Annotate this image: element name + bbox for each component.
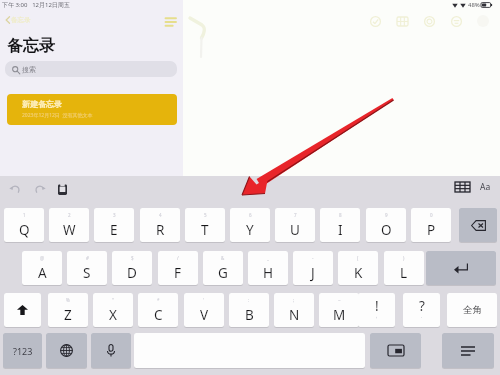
staticText: " — [112, 297, 114, 303]
staticText: 3 — [113, 212, 116, 218]
staticText: V — [200, 306, 209, 324]
button[interactable]: Notes menu — [162, 14, 178, 30]
staticText: W — [63, 221, 76, 239]
button[interactable]: ) — [384, 251, 424, 285]
staticText: ; — [293, 297, 295, 303]
staticText: 9 — [385, 212, 388, 218]
button[interactable]: Voice input — [91, 333, 131, 368]
staticText: J — [311, 264, 315, 282]
button[interactable]: ?123 — [3, 333, 42, 368]
staticText: T — [201, 221, 209, 239]
button[interactable]: Text style — [476, 179, 494, 195]
button[interactable]: / — [158, 251, 198, 285]
staticText: ( — [357, 255, 359, 261]
button[interactable]: Shift — [4, 293, 41, 327]
button[interactable]: 备忘录 — [5, 14, 41, 26]
button[interactable]: ~ — [319, 293, 359, 327]
staticText: : — [248, 297, 250, 303]
button[interactable]: ' — [184, 293, 224, 327]
button[interactable]: Redo — [31, 181, 49, 195]
staticText: / — [177, 255, 179, 261]
staticText: S — [83, 264, 91, 282]
button[interactable]: - — [293, 251, 333, 285]
button[interactable]: Paste — [54, 179, 70, 198]
button[interactable]: 5 — [185, 208, 225, 242]
button[interactable]: Hide keyboard — [370, 333, 421, 368]
button[interactable]: # — [67, 251, 107, 285]
staticText: * — [157, 297, 160, 303]
button[interactable]: 1 — [4, 208, 44, 242]
staticText: P — [427, 221, 436, 239]
button[interactable]: 7 — [275, 208, 315, 242]
staticText: ) — [403, 255, 405, 261]
staticText: ? — [419, 297, 425, 315]
button[interactable]: " — [93, 293, 133, 327]
button[interactable]: _ — [248, 251, 288, 285]
button[interactable]: Keyboard layout — [452, 179, 472, 195]
staticText: 新建备忘录 — [22, 99, 62, 109]
staticText: 备忘录 — [7, 36, 55, 56]
staticText: Q — [19, 221, 30, 239]
staticText: 全角 — [463, 304, 482, 316]
staticText: ! — [375, 297, 379, 315]
button[interactable]: . — [403, 293, 440, 327]
button[interactable]: 2 — [49, 208, 89, 242]
staticText: - — [312, 255, 314, 261]
staticText: 48% — [468, 1, 480, 9]
staticText: G — [218, 264, 228, 282]
button[interactable]: 6 — [230, 208, 270, 242]
button[interactable]: * — [138, 293, 178, 327]
staticText: 2 — [68, 212, 71, 218]
button[interactable]: % — [48, 293, 88, 327]
staticText: Y — [246, 221, 254, 239]
button[interactable]: ; — [274, 293, 314, 327]
staticText: ' — [203, 297, 205, 303]
button[interactable]: 0 — [411, 208, 451, 242]
button[interactable]: @ — [22, 251, 62, 285]
button[interactable]: Backspace — [459, 208, 497, 242]
button[interactable]: Return — [426, 251, 496, 285]
button[interactable]: , — [358, 293, 395, 327]
button[interactable]: 4 — [140, 208, 180, 242]
button[interactable]: 全角 — [447, 293, 497, 327]
staticText: 6 — [249, 212, 252, 218]
button[interactable]: Undo — [6, 181, 24, 195]
button[interactable]: 3 — [94, 208, 134, 242]
staticText: Aa — [480, 181, 491, 193]
staticText: ~ — [338, 297, 341, 303]
button[interactable]: Checklist — [368, 14, 382, 28]
button[interactable]: : — [229, 293, 269, 327]
staticText: . — [421, 313, 423, 320]
button[interactable]: Change language — [46, 333, 87, 368]
staticText: @ — [40, 255, 45, 261]
staticText: X — [109, 306, 117, 324]
staticText: 搜索 — [22, 65, 36, 74]
button[interactable]: More — [476, 14, 490, 28]
staticText: 7 — [294, 212, 297, 218]
staticText: H — [263, 264, 274, 282]
button[interactable]: Camera — [422, 14, 436, 28]
staticText: Z — [64, 306, 72, 324]
staticText: B — [245, 306, 254, 324]
button[interactable]: ( — [338, 251, 378, 285]
button[interactable]: 新建备忘录 — [7, 94, 177, 125]
staticText: 8 — [339, 212, 342, 218]
staticText: L — [400, 264, 408, 282]
button[interactable]: & — [203, 251, 243, 285]
staticText: 4 — [159, 212, 162, 218]
button[interactable]: 搜索 — [5, 61, 177, 77]
staticText: # — [86, 255, 89, 261]
button[interactable]: 8 — [320, 208, 360, 242]
staticText: 5 — [204, 212, 207, 218]
staticText: & — [221, 255, 225, 261]
button[interactable]: $ — [112, 251, 152, 285]
staticText: 备忘录 — [11, 16, 31, 24]
staticText: U — [290, 221, 300, 239]
staticText: K — [354, 264, 363, 282]
button[interactable]: Keyboard settings — [442, 333, 494, 368]
button[interactable]: Table — [395, 14, 409, 28]
button[interactable]: 9 — [366, 208, 406, 242]
button[interactable]: Markup — [449, 14, 463, 28]
staticText: A — [38, 264, 47, 282]
